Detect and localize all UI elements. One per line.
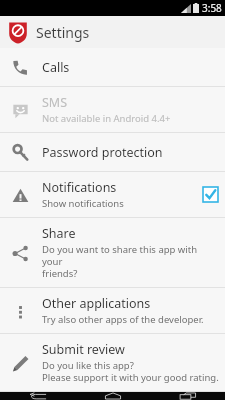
staticText: Show notifications (42, 197, 124, 210)
button[interactable]: Password protection (0, 133, 225, 171)
button[interactable]: Submit review (0, 334, 225, 391)
button[interactable]: Show notifications toggle (202, 186, 219, 203)
staticText: Share (42, 225, 76, 242)
staticText: Settings (36, 23, 90, 42)
button[interactable]: Home (75, 392, 150, 400)
staticText: Do you want to share this app with your … (42, 243, 219, 280)
staticText: SMS (42, 94, 68, 111)
button[interactable]: Share (0, 218, 225, 287)
button[interactable]: Recents (150, 392, 225, 400)
staticText: Submit review (42, 341, 125, 358)
button[interactable]: Notifications (0, 172, 225, 217)
button[interactable]: Back (0, 392, 75, 400)
staticText: Other applications (42, 295, 151, 312)
staticText: Do you like this app? Please support it … (42, 359, 219, 384)
button[interactable]: SMS (0, 87, 225, 132)
staticText: Notifications (42, 179, 117, 196)
button[interactable]: Calls (0, 48, 225, 86)
staticText: Calls (42, 59, 70, 76)
staticText: 3:58 (202, 1, 222, 15)
staticText: Password protection (42, 144, 163, 161)
button[interactable]: Other applications (0, 288, 225, 333)
staticText: Try also other apps of the developer. (42, 313, 204, 326)
staticText: Not available in Android 4.4+ (42, 112, 171, 125)
